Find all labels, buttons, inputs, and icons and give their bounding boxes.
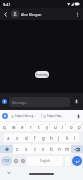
staticText: z: [16, 146, 19, 152]
button[interactable]: n: [55, 144, 63, 154]
staticText: m: [65, 146, 70, 152]
button[interactable]: Voice input: [75, 113, 81, 119]
staticText: 9:41: [3, 2, 11, 7]
button[interactable]: Settings: [19, 156, 26, 166]
button[interactable]: z: [13, 144, 22, 154]
staticText: t: [38, 124, 40, 130]
button[interactable]: f: [31, 133, 39, 142]
staticText: n: [58, 146, 61, 152]
button[interactable]: y: [43, 122, 51, 131]
staticText: https://ww...: [47, 114, 64, 118]
button[interactable]: ?123: [1, 156, 12, 166]
staticText: b: [50, 146, 53, 152]
staticText: Alex Morgan: [21, 12, 42, 17]
button[interactable]: k: [63, 133, 71, 142]
button[interactable]: v: [39, 144, 47, 154]
staticText: ?123: [3, 159, 10, 163]
button[interactable]: Yesterday: [35, 71, 49, 78]
button[interactable]: https://docs.g...: [10, 112, 41, 120]
button[interactable]: i: [59, 122, 67, 131]
button[interactable]: Back: [0, 8, 11, 20]
staticText: s: [16, 135, 19, 141]
staticText: d: [25, 135, 28, 141]
button[interactable]: Enter: [72, 156, 82, 166]
button[interactable]: e: [18, 122, 27, 131]
staticText: Message...: [12, 100, 29, 105]
button[interactable]: b: [47, 144, 55, 154]
staticText: 2: [16, 123, 18, 126]
staticText: 0: [81, 123, 83, 126]
staticText: x: [25, 146, 28, 152]
staticText: l: [74, 135, 76, 141]
staticText: k: [66, 135, 69, 141]
button[interactable]: l: [71, 133, 79, 142]
staticText: v: [42, 146, 45, 152]
staticText: 8: [65, 123, 67, 126]
staticText: 3: [25, 123, 27, 126]
staticText: h: [50, 135, 53, 141]
staticText: 7: [57, 123, 59, 126]
button[interactable]: Hide keyboard: [5, 169, 12, 176]
staticText: a: [7, 135, 10, 141]
button[interactable]: c: [31, 144, 39, 154]
staticText: https://docs.g...: [15, 114, 36, 118]
button[interactable]: a: [4, 133, 13, 142]
button[interactable]: o: [67, 122, 75, 131]
staticText: f: [34, 135, 36, 141]
button[interactable]: d: [22, 133, 31, 142]
staticText: r: [30, 124, 32, 130]
staticText: g: [42, 135, 45, 141]
button[interactable]: m: [63, 144, 71, 154]
button[interactable]: j: [55, 133, 63, 142]
button[interactable]: h: [47, 133, 55, 142]
button[interactable]: Backspace: [71, 145, 83, 153]
button[interactable]: g: [39, 133, 47, 142]
staticText: u: [54, 124, 57, 130]
button[interactable]: Google Assistant: [2, 113, 8, 119]
staticText: i: [62, 124, 64, 130]
staticText: 1: [7, 123, 9, 126]
staticText: j: [58, 135, 60, 141]
staticText: c: [34, 146, 37, 152]
button[interactable]: u: [51, 122, 59, 131]
staticText: e: [21, 124, 24, 130]
button[interactable]: r: [27, 122, 35, 131]
staticText: y: [46, 124, 49, 130]
staticText: w: [12, 124, 16, 130]
button[interactable]: Add attachment: [2, 99, 7, 104]
button[interactable]: .: [65, 156, 70, 166]
staticText: Yesterday: [36, 73, 48, 77]
staticText: 4: [33, 123, 35, 126]
button[interactable]: https://ww...: [42, 112, 74, 120]
staticText: .: [67, 159, 69, 164]
staticText: 9: [73, 123, 75, 126]
button[interactable]: Emoji: [12, 156, 19, 166]
staticText: 5: [41, 123, 43, 126]
staticText: 6: [49, 123, 51, 126]
staticText: English: [40, 159, 51, 163]
button[interactable]: Shift: [0, 145, 13, 153]
button[interactable]: q: [0, 122, 9, 131]
button[interactable]: w: [9, 122, 18, 131]
button[interactable]: p: [75, 122, 83, 131]
button[interactable]: More options: [72, 8, 83, 20]
button[interactable]: t: [35, 122, 43, 131]
button[interactable]: Message...: [9, 97, 70, 107]
button[interactable]: x: [22, 144, 31, 154]
staticText: o: [70, 124, 73, 130]
button[interactable]: s: [13, 133, 22, 142]
button[interactable]: Voice message: [73, 98, 80, 105]
staticText: q: [3, 124, 6, 130]
staticText: p: [78, 124, 81, 130]
button[interactable]: English: [27, 156, 63, 166]
